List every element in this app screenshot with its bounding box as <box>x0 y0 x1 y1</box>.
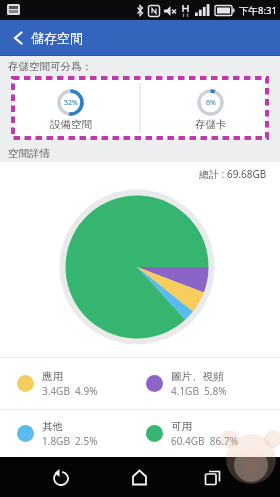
staticText: 52% <box>64 98 78 108</box>
staticText: 空間詳情 <box>8 147 50 160</box>
button[interactable]: 52% <box>7 82 134 138</box>
staticText: 3.4GB 4.9% <box>42 384 98 398</box>
staticText: 下午8:31 <box>239 4 277 17</box>
button[interactable] <box>37 457 84 497</box>
staticText: 存儲空間可分爲： <box>8 60 92 73</box>
staticText: 應用 <box>42 370 63 383</box>
staticText: 69.68GB <box>227 167 267 181</box>
staticText: 4.1GB 5.8% <box>171 384 227 398</box>
staticText: 圖片、視頻 <box>171 370 224 383</box>
button[interactable]: 可用 <box>140 410 280 457</box>
button[interactable] <box>116 457 163 497</box>
staticText: 可用 <box>171 420 192 433</box>
button[interactable]: 其他 <box>0 410 140 457</box>
button[interactable]: 52% <box>13 78 267 138</box>
button[interactable]: 儲存空間 <box>0 20 280 56</box>
staticText: 1.8GB 2.5% <box>42 434 98 448</box>
button[interactable]: 6% <box>147 82 274 138</box>
staticText: 總計 : <box>199 167 227 181</box>
staticText: 存儲卡 <box>195 118 227 131</box>
staticText: 設備空間 <box>50 118 92 131</box>
button[interactable]: 應用 <box>0 358 140 409</box>
staticText: 儲存空間 <box>31 30 83 46</box>
staticText: 其他 <box>42 420 63 433</box>
button[interactable]: 圖片、視頻 <box>140 358 280 409</box>
staticText: 60.4GB 86.7% <box>171 434 238 448</box>
staticText: 6% <box>206 98 216 108</box>
button[interactable] <box>189 457 236 497</box>
